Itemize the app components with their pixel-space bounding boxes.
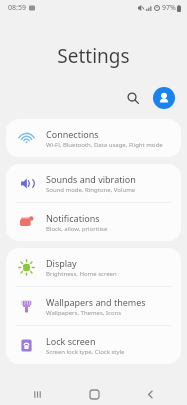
- staticText: Lock screen: [46, 335, 96, 347]
- button[interactable]: Display: [6, 248, 181, 286]
- staticText: Settings: [0, 43, 187, 69]
- staticText: Notifications: [46, 212, 100, 224]
- button[interactable]: Sounds and vibration: [6, 164, 181, 202]
- staticText: Brightness, Home screen: [46, 270, 117, 278]
- staticText: Connections: [46, 128, 99, 140]
- staticText: Wallpapers and themes: [46, 296, 146, 308]
- staticText: Sounds and vibration: [46, 173, 136, 185]
- button[interactable]: Wallpapers and themes: [6, 287, 181, 325]
- button[interactable]: Back: [130, 383, 170, 405]
- button[interactable]: Account: [153, 87, 175, 109]
- staticText: Sound mode, Ringtone, Volume: [46, 186, 136, 194]
- button[interactable]: Home: [74, 383, 114, 405]
- button[interactable]: Search: [121, 86, 145, 110]
- button[interactable]: Lock screen: [6, 326, 181, 364]
- staticText: Wallpapers, Themes, Icons: [46, 309, 122, 317]
- staticText: Block, allow, prioritise: [46, 225, 108, 233]
- button[interactable]: Recents: [17, 383, 57, 405]
- staticText: Wi-Fi, Bluetooth, Data usage, Flight mod…: [46, 141, 163, 149]
- staticText: Screen lock type, Clock style: [46, 348, 125, 356]
- staticText: 08:59: [8, 3, 26, 13]
- button[interactable]: Notifications: [6, 203, 181, 241]
- button[interactable]: Connections: [6, 119, 181, 157]
- staticText: Display: [46, 257, 77, 269]
- staticText: 97%: [162, 3, 176, 13]
